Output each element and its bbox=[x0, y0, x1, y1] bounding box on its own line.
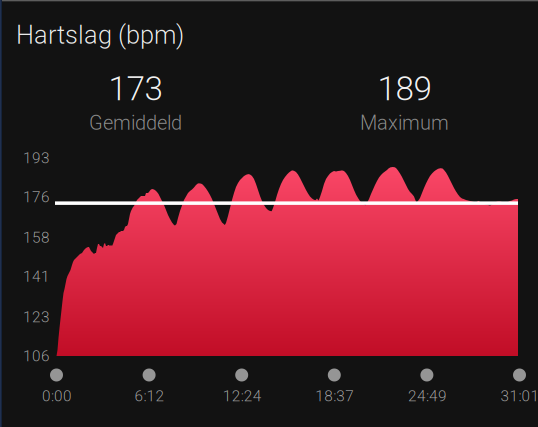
staticText: 173 bbox=[108, 69, 162, 108]
staticText: 123 bbox=[23, 308, 50, 326]
staticText: 6:12 bbox=[135, 387, 165, 405]
staticText: 193 bbox=[23, 149, 50, 167]
staticText: 12:24 bbox=[223, 387, 262, 405]
staticText: 106 bbox=[23, 347, 50, 365]
staticText: 158 bbox=[23, 228, 50, 246]
staticText: 176 bbox=[23, 188, 50, 206]
staticText: 18:37 bbox=[315, 387, 354, 405]
staticText: 189 bbox=[377, 69, 431, 108]
staticText: 24:49 bbox=[408, 387, 447, 405]
staticText: Maximum bbox=[360, 111, 449, 135]
staticText: Hartslag (bpm) bbox=[16, 20, 184, 50]
staticText: 0:00 bbox=[42, 387, 72, 405]
staticText: 141 bbox=[23, 267, 50, 285]
staticText: 31:01 bbox=[500, 387, 538, 405]
staticText: Gemiddeld bbox=[89, 111, 182, 135]
